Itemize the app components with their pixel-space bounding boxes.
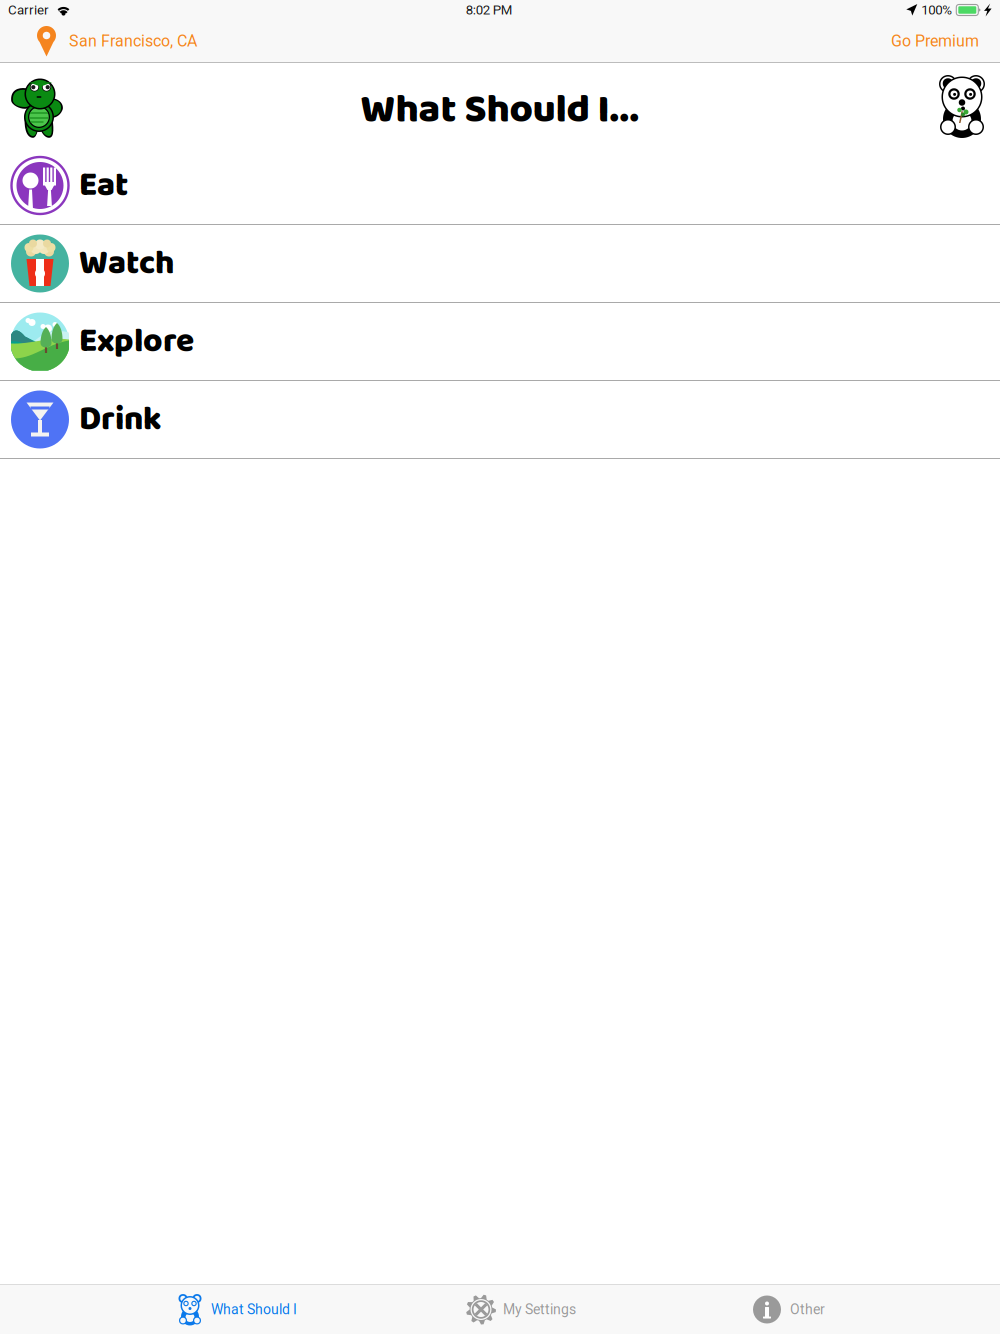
staticText: My Settings [503,1301,576,1318]
button[interactable]: Eat [0,147,1000,225]
staticText: What Should I... [360,78,639,142]
button[interactable]: What Should I [94,1285,381,1334]
staticText: San Francisco, CA [69,32,197,50]
button[interactable]: Other [661,1285,916,1334]
button[interactable]: Watch [0,225,1000,303]
staticText: What Should I [211,1301,297,1318]
staticText: Explore [79,315,194,368]
staticText: Eat [79,159,128,212]
staticText: Carrier [8,2,49,18]
staticText: 8:02 PM [466,2,513,18]
staticText: Watch [79,237,175,290]
button[interactable]: San Francisco, CA [0,20,211,62]
button[interactable]: Drink [0,381,1000,459]
staticText: 100% [921,2,952,18]
staticText: Other [790,1301,825,1318]
button[interactable]: My Settings [381,1285,661,1334]
button[interactable]: Go Premium [870,20,1000,62]
button[interactable]: Explore [0,303,1000,381]
staticText: Go Premium [891,32,979,50]
staticText: Drink [79,393,162,446]
